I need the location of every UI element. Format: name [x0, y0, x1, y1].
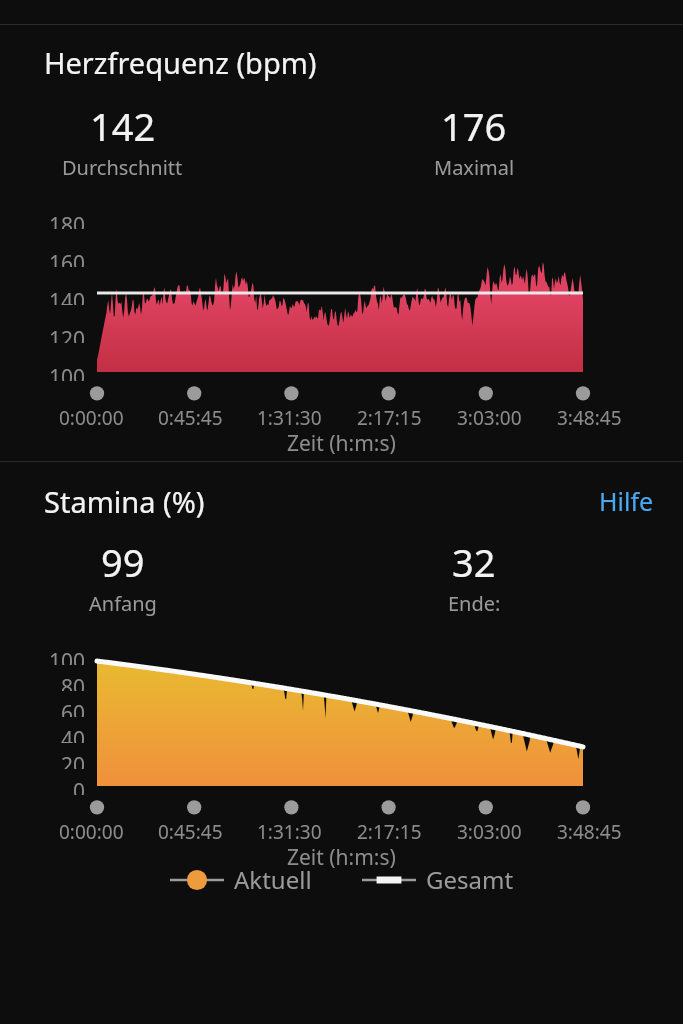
staticText: 3:03:00 [457, 405, 522, 431]
staticText: 99 [101, 536, 145, 588]
button[interactable]: Gesamt [362, 863, 514, 896]
staticText: 100 [49, 363, 86, 381]
staticText: Ende: [448, 590, 501, 617]
staticText: 3:48:45 [557, 819, 622, 845]
staticText: 1:31:30 [257, 819, 322, 845]
staticText: 180 [49, 211, 86, 229]
staticText: 32 [452, 536, 496, 588]
staticText: 0:45:45 [158, 819, 223, 845]
staticText: 0 [73, 777, 86, 795]
staticText: Hilfe [599, 484, 654, 518]
button[interactable]: Hilfe [593, 480, 660, 522]
staticText: Maximal [434, 154, 515, 181]
staticText: 40 [61, 725, 86, 743]
staticText: Durchschnitt [62, 154, 183, 181]
staticText: 100 [49, 647, 86, 665]
staticText: Zeit (h:m:s) [287, 429, 396, 458]
staticText: 142 [90, 100, 156, 152]
staticText: 0:45:45 [158, 405, 223, 431]
staticText: Gesamt [426, 863, 514, 896]
staticText: 160 [49, 249, 86, 267]
staticText: 2:17:15 [357, 819, 422, 845]
staticText: Herzfrequenz (bpm) [44, 43, 317, 82]
button[interactable]: Aktuell [170, 863, 312, 896]
staticText: Aktuell [234, 863, 312, 896]
staticText: 176 [441, 100, 507, 152]
staticText: 80 [61, 673, 86, 691]
staticText: 120 [49, 325, 86, 343]
staticText: Anfang [89, 590, 157, 617]
staticText: 60 [61, 699, 86, 717]
staticText: 0:00:00 [59, 819, 124, 845]
staticText: 140 [49, 287, 86, 305]
staticText: 0:00:00 [59, 405, 124, 431]
staticText: 20 [61, 751, 86, 769]
staticText: Zeit (h:m:s) [287, 843, 396, 872]
staticText: 3:03:00 [457, 819, 522, 845]
staticText: 3:48:45 [557, 405, 622, 431]
staticText: Stamina (%) [44, 482, 205, 521]
staticText: 2:17:15 [357, 405, 422, 431]
staticText: 1:31:30 [257, 405, 322, 431]
